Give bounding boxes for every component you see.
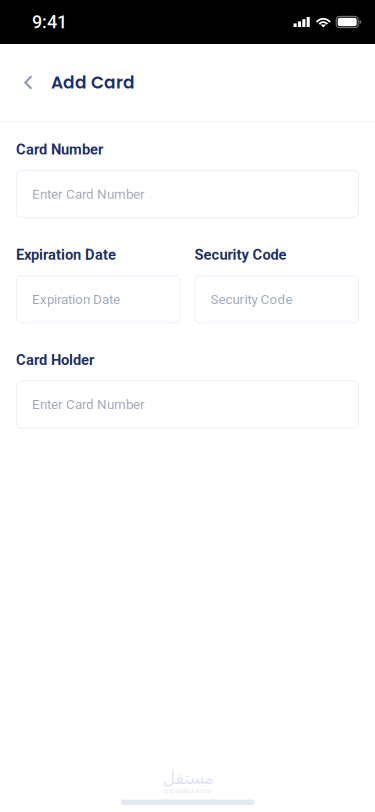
staticText: 9:41	[32, 11, 67, 33]
button[interactable]: Expiration Date	[16, 275, 180, 323]
staticText: Enter Card Number	[32, 186, 145, 202]
staticText: Security Code	[194, 246, 286, 263]
staticText: مستقل	[162, 768, 213, 788]
staticText: mostaql.com	[163, 786, 211, 795]
staticText: Card Holder	[16, 351, 94, 369]
staticText: Expiration Date	[32, 292, 120, 307]
staticText: Card Number	[16, 141, 103, 158]
button[interactable]: Security Code	[194, 275, 359, 323]
button[interactable]: Enter Card Number	[16, 381, 359, 429]
button[interactable]: Back	[12, 60, 44, 104]
staticText: Enter Card Number	[32, 397, 145, 412]
staticText: Expiration Date	[16, 246, 116, 263]
button[interactable]: Enter Card Number	[16, 170, 359, 218]
staticText: Security Code	[210, 292, 292, 307]
staticText: Add Card	[51, 71, 135, 94]
